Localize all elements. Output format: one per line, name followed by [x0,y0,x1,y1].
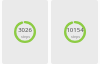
staticText: steps [21,34,30,39]
button[interactable]: 10154 [51,0,98,64]
button[interactable]: 3026 [2,0,48,64]
staticText: steps [71,34,80,39]
staticText: 10154 [66,26,84,34]
staticText: 3026 [18,26,32,34]
